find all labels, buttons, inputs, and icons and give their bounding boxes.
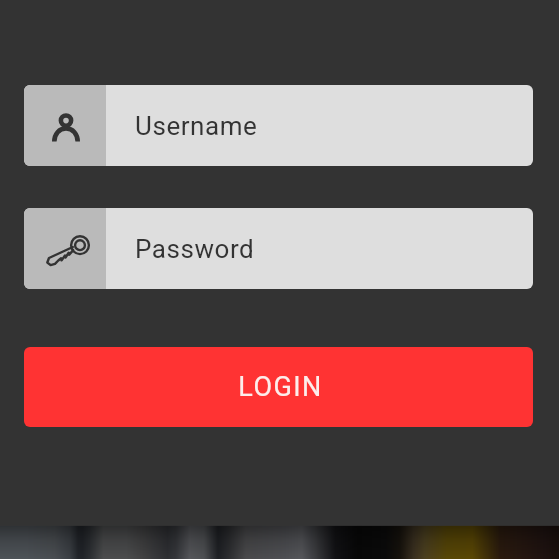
staticText: LOGIN: [238, 371, 323, 403]
button[interactable]: Password: [24, 208, 533, 289]
staticText: Username: [135, 111, 258, 141]
button[interactable]: Username: [24, 85, 533, 166]
staticText: Password: [135, 234, 255, 264]
button[interactable]: LOGIN: [24, 347, 533, 427]
